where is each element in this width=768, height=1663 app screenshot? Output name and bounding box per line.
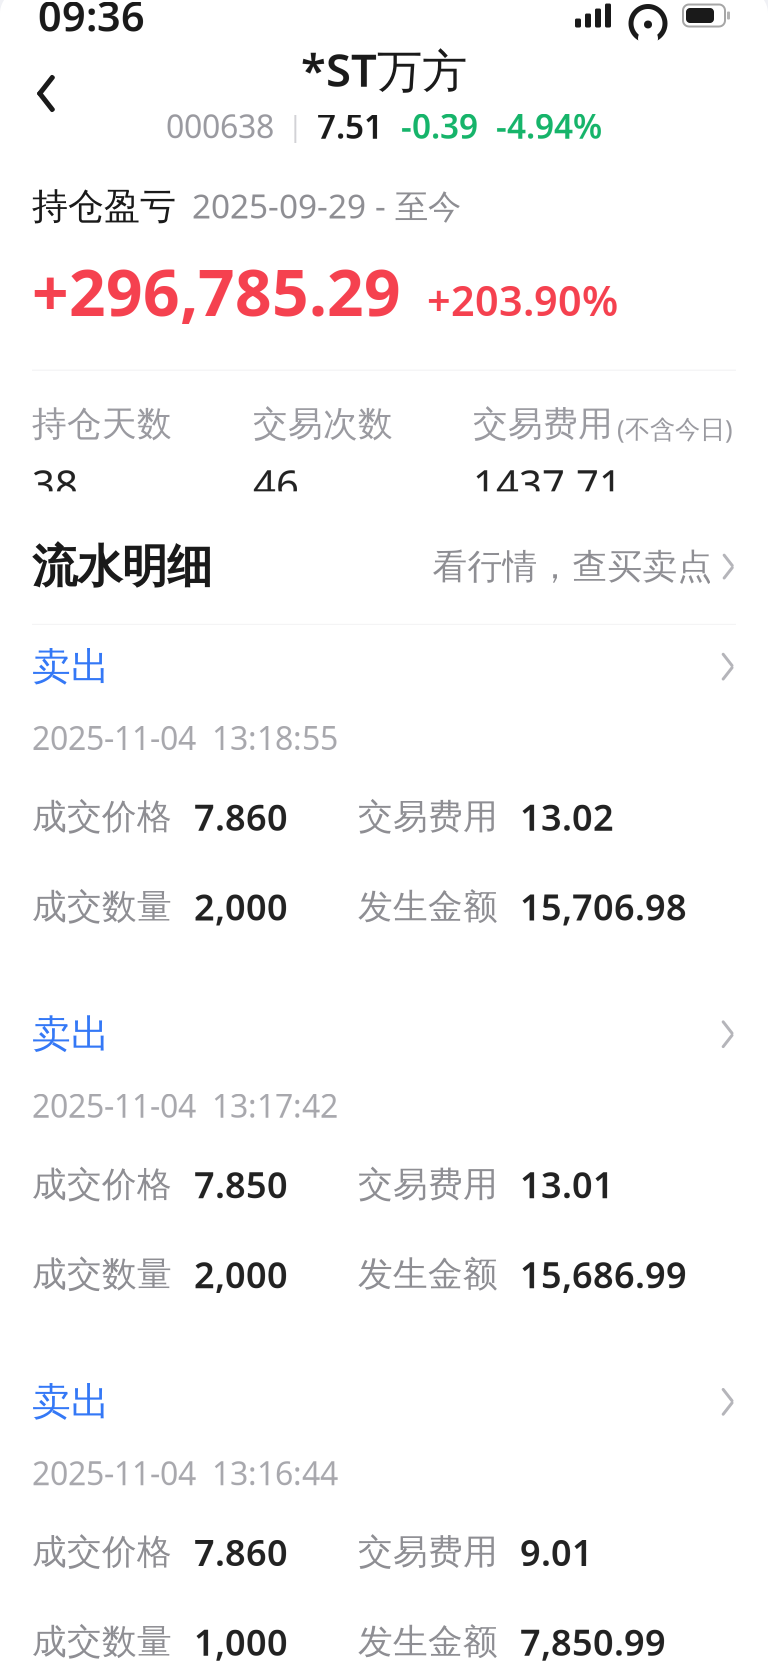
staticText: 2025-11-04 13:17:42 <box>32 1084 338 1126</box>
staticText: 15,686.99 <box>520 1250 687 1298</box>
staticText: 2,000 <box>194 1250 288 1298</box>
staticText: 发生金额 <box>358 1253 498 1295</box>
button[interactable]: 卖出 <box>0 625 768 992</box>
staticText: 15,706.98 <box>520 883 687 930</box>
staticText: 7.51 <box>317 104 383 148</box>
staticText: 看行情，查买卖点 <box>432 545 712 588</box>
staticText: 卖出 <box>32 1010 110 1058</box>
staticText: 9.01 <box>520 1528 593 1576</box>
staticText: 成交数量 <box>32 1253 172 1295</box>
staticText: 46 <box>253 457 299 510</box>
staticText: 卖出 <box>32 643 110 690</box>
staticText: 2025-11-04 13:18:55 <box>32 716 338 759</box>
staticText: 持仓盈亏 <box>32 184 176 229</box>
staticText: 000638 <box>166 104 274 147</box>
staticText: 交易费用 <box>358 795 498 838</box>
staticText: 2025-11-04 13:16:44 <box>32 1452 338 1494</box>
staticText: 成交价格 <box>32 795 172 838</box>
staticText: -4.94% <box>478 104 602 148</box>
staticText: 13.01 <box>520 1160 614 1208</box>
staticText: 成交数量 <box>32 885 172 928</box>
staticText: (不含今日) <box>617 412 733 445</box>
staticText: 7.860 <box>194 793 288 841</box>
staticText: 7.850 <box>194 1160 288 1208</box>
staticText: 交易费用 <box>358 1163 498 1206</box>
staticText: 1,000 <box>194 1618 288 1663</box>
staticText: 成交价格 <box>32 1163 172 1206</box>
staticText: | <box>274 108 317 143</box>
staticText: 成交数量 <box>32 1620 172 1663</box>
staticText: -0.39 <box>383 104 478 148</box>
button[interactable]: 看行情，查买卖点 <box>432 535 736 598</box>
staticText: +296,785.29 <box>32 249 401 334</box>
staticText: 13.02 <box>520 793 614 841</box>
staticText: 持仓天数 <box>32 403 172 445</box>
button[interactable]: 卖出 <box>0 1360 768 1663</box>
staticText: 卖出 <box>32 1378 110 1426</box>
staticText: 1437.71 <box>473 457 622 510</box>
staticText: 发生金额 <box>358 1620 498 1663</box>
button[interactable]: 返回 <box>14 61 78 125</box>
staticText: *ST万方 <box>301 39 467 100</box>
staticText: 成交价格 <box>32 1531 172 1573</box>
staticText: 交易费用 <box>358 1531 498 1573</box>
staticText: +203.90% <box>427 272 618 327</box>
staticText: 09:36 <box>38 0 145 43</box>
button[interactable]: 卖出 <box>0 992 768 1360</box>
staticText: 发生金额 <box>358 885 498 928</box>
staticText: 2,000 <box>194 883 288 930</box>
staticText: 2025-09-29 - 至今 <box>192 183 461 228</box>
staticText: 7.860 <box>194 1528 288 1576</box>
staticText: 交易次数 <box>253 403 393 445</box>
staticText: 交易费用 <box>473 403 613 445</box>
staticText: 7,850.99 <box>520 1618 666 1663</box>
staticText: 流水明细 <box>32 539 212 594</box>
staticText: 38 <box>32 457 78 510</box>
